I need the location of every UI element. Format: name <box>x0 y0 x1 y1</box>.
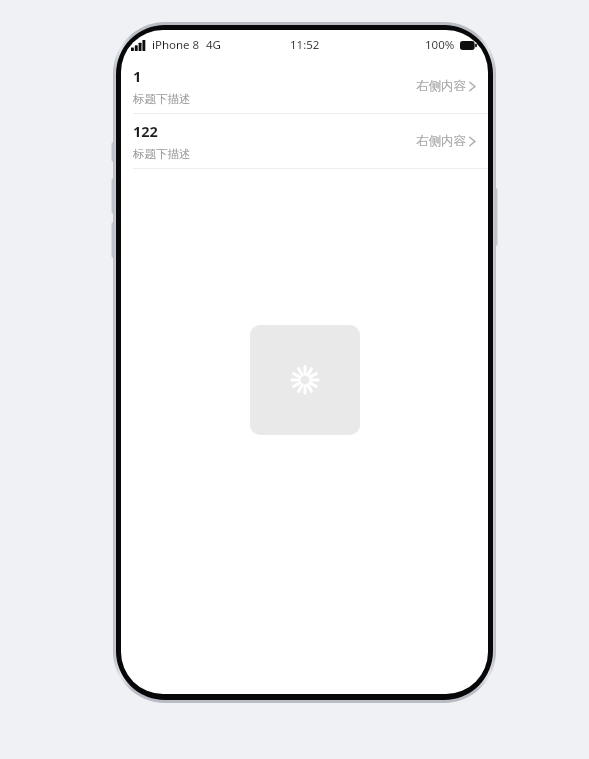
button[interactable]: 1 <box>121 59 488 113</box>
staticText: 右侧内容 <box>416 133 466 149</box>
staticText: 1 <box>133 66 142 86</box>
button[interactable]: 122 <box>121 114 488 168</box>
staticText: iPhone 8 <box>152 37 200 53</box>
staticText: 标题下描述 <box>133 92 191 106</box>
staticText: 4G <box>206 37 221 53</box>
staticText: 标题下描述 <box>133 147 191 161</box>
staticText: 11:52 <box>290 37 320 53</box>
other: Battery full <box>460 41 477 50</box>
other: Loading <box>291 366 319 394</box>
staticText: 122 <box>133 121 158 141</box>
staticText: 100% <box>425 37 455 53</box>
staticText: 右侧内容 <box>416 78 466 94</box>
other: Signal strength <box>131 40 146 51</box>
